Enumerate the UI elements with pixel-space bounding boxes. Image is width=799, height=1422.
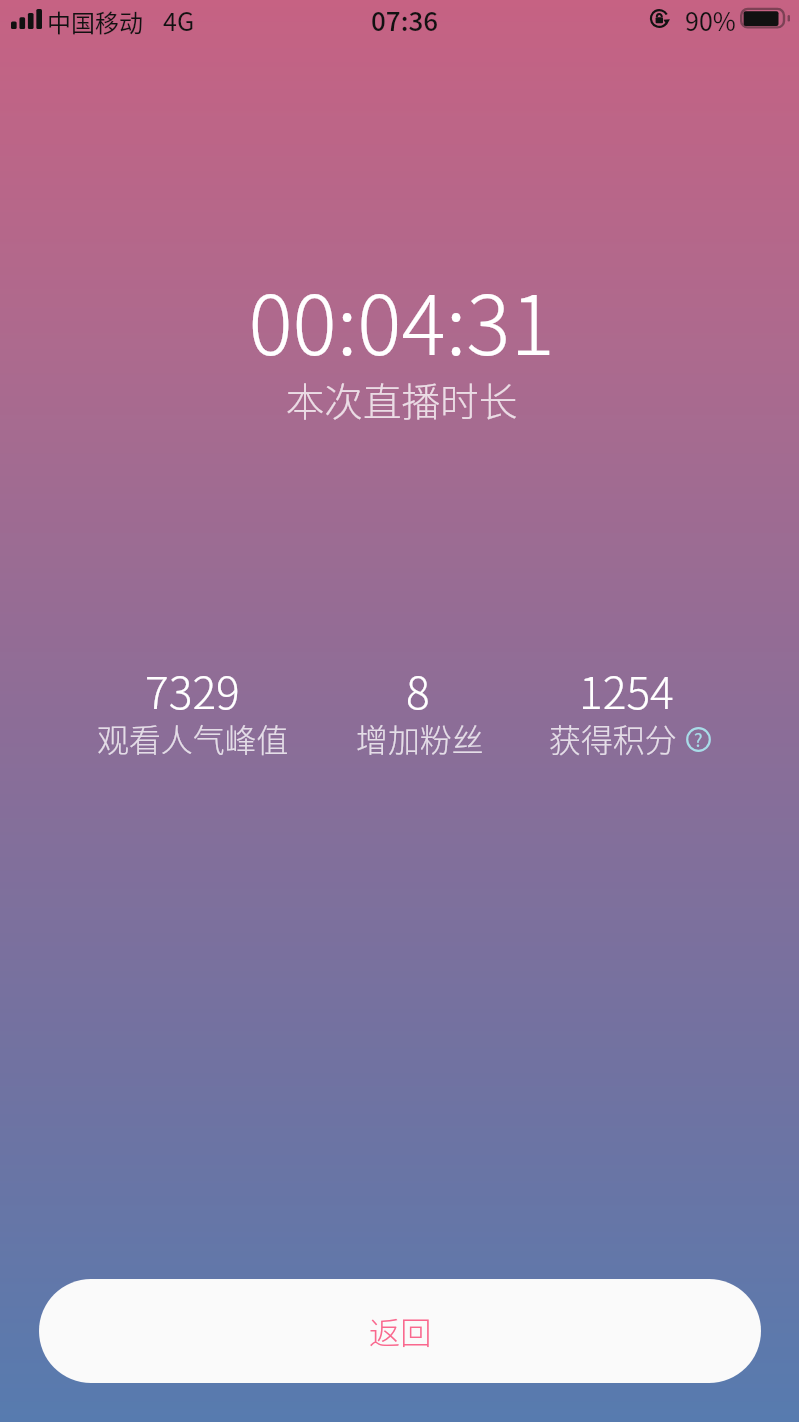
- button[interactable]: Help: [686, 727, 711, 752]
- staticText: ?: [694, 726, 703, 751]
- staticText: 00:04:31: [2, 259, 799, 378]
- button[interactable]: 增加粉丝: [240, 715, 600, 761]
- staticText: 中国移动: [47, 4, 143, 39]
- staticText: 返回: [369, 1308, 432, 1353]
- staticText: 本次直播时长: [2, 371, 799, 427]
- staticText: 8: [406, 658, 430, 722]
- staticText: 07:36: [371, 1, 439, 39]
- staticText: 增加粉丝: [356, 715, 484, 761]
- staticText: 1254: [579, 658, 674, 722]
- staticText: 7329: [145, 658, 240, 722]
- button[interactable]: 返回: [39, 1279, 761, 1383]
- button[interactable]: 获得积分: [450, 715, 799, 761]
- staticText: 90%: [685, 2, 736, 38]
- button[interactable]: 观看人气峰值: [13, 715, 373, 761]
- staticText: 获得积分: [549, 715, 677, 761]
- staticText: 4G: [163, 2, 195, 38]
- staticText: 观看人气峰值: [97, 715, 289, 761]
